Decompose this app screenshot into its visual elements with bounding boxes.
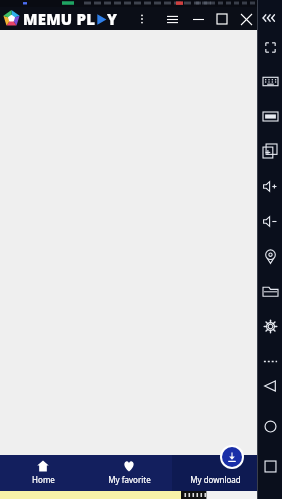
staticText: My download xyxy=(190,474,241,485)
button[interactable]: My download xyxy=(222,447,242,467)
staticText: My favorite xyxy=(108,474,151,485)
button[interactable]: Location xyxy=(259,245,281,267)
button[interactable]: Recent apps xyxy=(259,455,281,477)
button[interactable]: Full screen xyxy=(259,36,281,58)
button[interactable]: My favorite xyxy=(86,455,172,491)
button[interactable]: Keyboard xyxy=(259,70,281,92)
button[interactable]: Volume up xyxy=(259,175,281,197)
button[interactable]: Collapse sidebar xyxy=(259,7,281,29)
button[interactable]: Home xyxy=(259,415,281,437)
staticText: Home xyxy=(32,474,55,485)
button[interactable]: Minimize xyxy=(188,9,208,29)
button[interactable]: More xyxy=(259,350,281,372)
button[interactable]: Multiple instances xyxy=(259,140,281,162)
staticText: MEMU PL xyxy=(23,9,96,29)
button[interactable]: Shared folder xyxy=(259,280,281,302)
button[interactable]: Settings xyxy=(259,315,281,337)
button[interactable]: More options xyxy=(132,9,152,29)
button[interactable]: Close xyxy=(236,9,256,29)
button[interactable]: Volume down xyxy=(259,210,281,232)
button[interactable]: Home xyxy=(0,455,86,491)
button[interactable]: Menu xyxy=(162,9,182,29)
button[interactable]: Back xyxy=(259,375,281,397)
button[interactable]: My download xyxy=(172,455,258,491)
button[interactable]: Install APK xyxy=(259,105,281,127)
staticText: Y xyxy=(107,9,117,29)
button[interactable]: Maximize xyxy=(212,9,232,29)
